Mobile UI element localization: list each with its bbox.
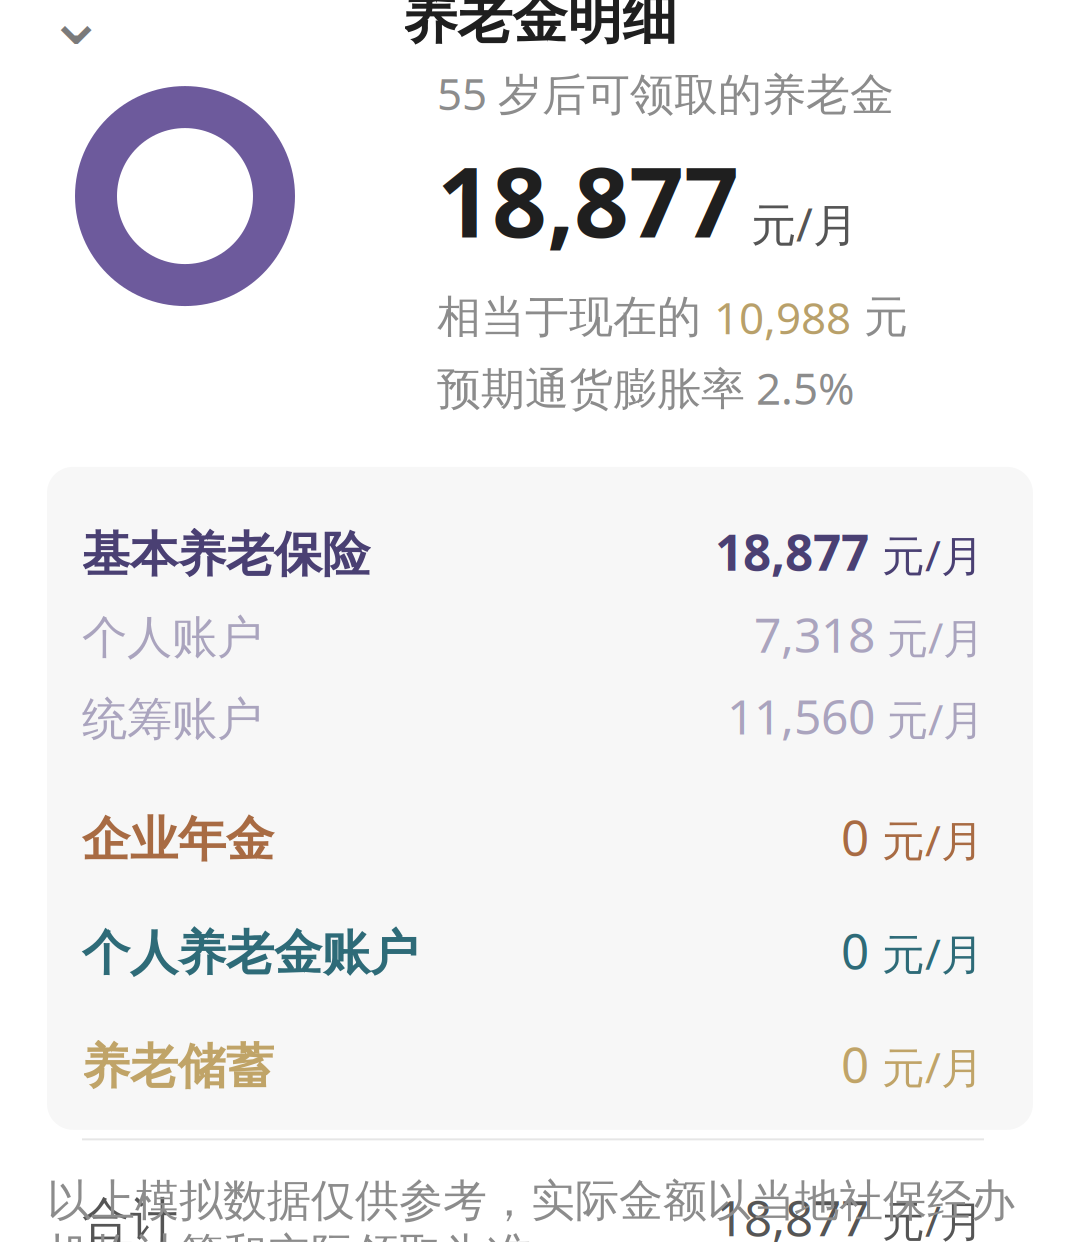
staticText: 合计 [82, 1191, 178, 1242]
staticText: 元/月 [869, 1192, 984, 1242]
staticText: 元/月 [869, 1038, 984, 1095]
staticText: 元 [851, 290, 908, 344]
staticText: 元/月 [751, 194, 858, 254]
staticText: 预期通货膨胀率 2.5% [437, 358, 855, 417]
staticText: 元/月 [869, 526, 984, 583]
staticText: 个人账户 [82, 610, 262, 666]
staticText: 11,560 [727, 684, 875, 748]
staticText: 18,877 [715, 519, 869, 584]
staticText: 统筹账户 [82, 692, 262, 747]
staticText: 元/月 [869, 925, 984, 982]
staticText: 0 [841, 917, 869, 983]
staticText: 相当于现在的 [437, 290, 714, 344]
staticText: 18,877 [437, 136, 739, 264]
staticText: 18,877 [716, 1184, 869, 1242]
staticText: 元/月 [869, 811, 984, 868]
staticText: 元/月 [875, 692, 984, 747]
staticText: 元/月 [875, 610, 984, 665]
staticText: 10,988 [714, 288, 851, 346]
button[interactable]: 收起 [40, 0, 112, 55]
staticText: 0 [841, 804, 869, 869]
staticText: 以上模拟数据仅供参考，实际金额以当地社保经办机构计算和实际领取为准 [47, 1174, 1015, 1242]
staticText: ⌄ [46, 0, 106, 60]
staticText: 0 [841, 1031, 869, 1096]
staticText: 55 岁后可领取的养老金 [437, 64, 894, 122]
staticText: 个人养老金账户 [82, 924, 418, 983]
staticText: 基本养老保险 [82, 525, 370, 584]
staticText: 养老储蓄 [82, 1037, 274, 1096]
staticText: 7,318 [754, 602, 875, 666]
staticText: 养老金明细 [402, 0, 677, 53]
staticText: 企业年金 [82, 810, 274, 869]
